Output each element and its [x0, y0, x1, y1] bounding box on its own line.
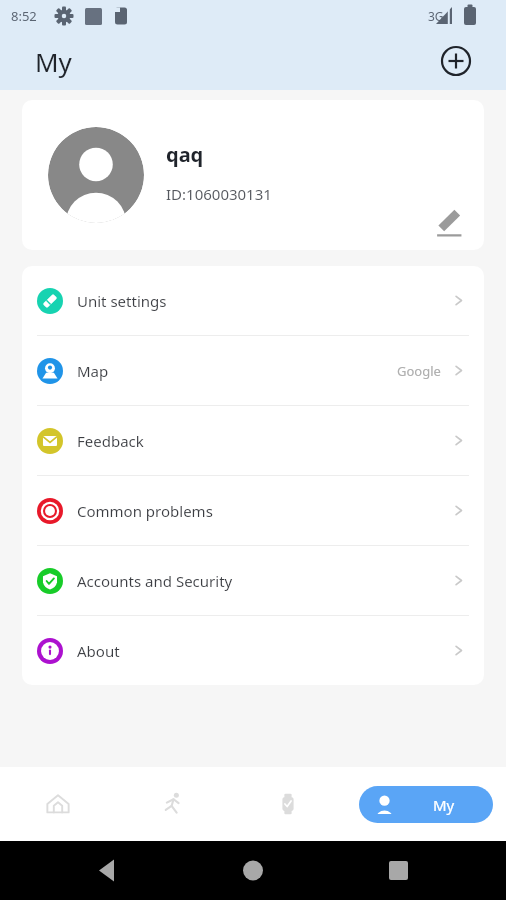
- button[interactable]: Accounts and Security: [22, 546, 484, 616]
- button[interactable]: qaq: [22, 100, 484, 250]
- staticText: My: [35, 44, 72, 79]
- button[interactable]: Feedback: [22, 406, 484, 476]
- button[interactable]: Exercise: [115, 767, 230, 841]
- staticText: Accounts and Security: [77, 571, 233, 591]
- button[interactable]: Edit profile: [432, 206, 464, 238]
- staticText: Google: [397, 362, 441, 380]
- staticText: Feedback: [77, 431, 144, 451]
- staticText: About: [77, 641, 120, 661]
- button[interactable]: My: [359, 786, 493, 823]
- staticText: qaq: [166, 141, 204, 168]
- button[interactable]: Map: [22, 336, 484, 406]
- staticText: Unit settings: [77, 291, 167, 311]
- button[interactable]: About: [22, 616, 484, 685]
- button[interactable]: Add device: [438, 43, 474, 79]
- staticText: 8:52: [11, 7, 37, 25]
- button[interactable]: Unit settings: [22, 266, 484, 336]
- button[interactable]: Home: [0, 767, 115, 841]
- staticText: 3G: [428, 8, 444, 24]
- button[interactable]: Device: [230, 767, 345, 841]
- staticText: My: [433, 795, 455, 815]
- staticText: ID:1060030131: [166, 184, 272, 204]
- staticText: Map: [77, 361, 109, 381]
- staticText: Common problems: [77, 501, 213, 521]
- button[interactable]: Common problems: [22, 476, 484, 546]
